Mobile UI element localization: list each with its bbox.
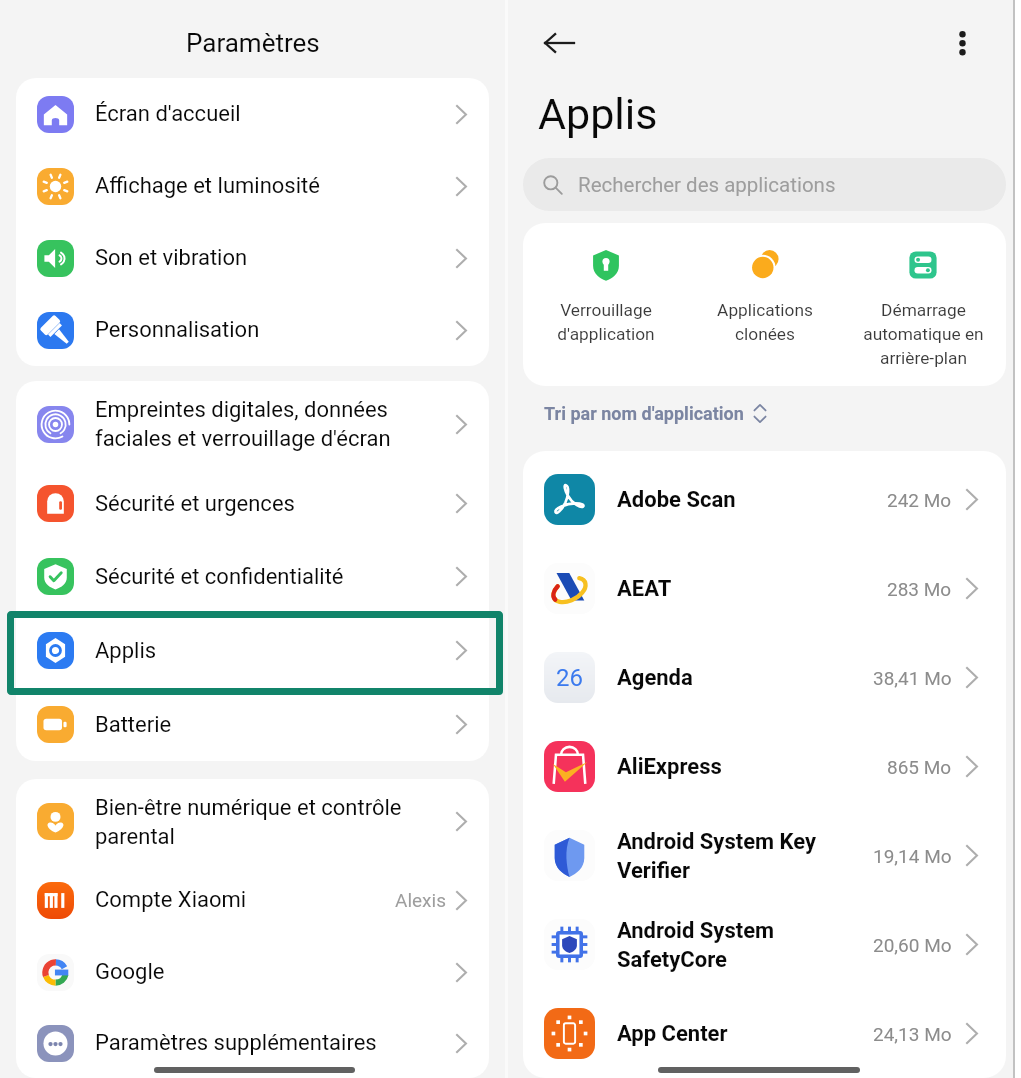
staticText: 38,41 Mo (873, 667, 952, 689)
staticText: Alexis (395, 889, 446, 911)
staticText: AliExpress (617, 754, 887, 780)
button[interactable]: Sécurité et confidentialité (16, 540, 489, 613)
staticText: Rechercher des applications (578, 173, 836, 197)
button[interactable]: Back (535, 19, 583, 67)
button[interactable]: Écran d'accueil (16, 78, 489, 150)
button[interactable]: 26 (523, 633, 1006, 722)
button[interactable]: Compte Xiaomi (16, 864, 489, 936)
button[interactable]: Applis (16, 613, 489, 688)
staticText: 24,13 Mo (873, 1023, 952, 1045)
staticText: Agenda (617, 665, 873, 691)
staticText: Verrouillage d'application (557, 300, 655, 344)
staticText: Google (95, 959, 456, 985)
staticText: AEAT (617, 576, 887, 602)
button[interactable]: Rechercher des applications (523, 158, 1006, 211)
staticText: Adobe Scan (617, 487, 887, 513)
button[interactable]: Tri par nom d'application (544, 403, 767, 424)
button[interactable]: Sécurité et urgences (16, 467, 489, 540)
staticText: 20,60 Mo (873, 934, 952, 956)
staticText: Son et vibration (95, 245, 456, 271)
staticText: Compte Xiaomi (95, 887, 395, 913)
button[interactable]: Son et vibration (16, 222, 489, 294)
staticText: Paramètres supplémentaires (95, 1030, 456, 1056)
button[interactable]: App Center (523, 989, 1006, 1078)
button[interactable]: Personnalisation (16, 294, 489, 366)
staticText: Paramètres (186, 28, 320, 58)
button[interactable]: Applications clonées (690, 223, 840, 344)
staticText: App Center (617, 1021, 873, 1047)
staticText: Tri par nom d'application (544, 403, 744, 424)
staticText: Batterie (95, 712, 456, 738)
button[interactable]: Empreintes digitales, données faciales e… (16, 381, 489, 467)
button[interactable]: More options (938, 19, 986, 67)
staticText: Android System Key Verifier (617, 829, 873, 883)
button[interactable]: Batterie (16, 688, 489, 761)
staticText: Bien-être numérique et contrôle parental (95, 795, 456, 849)
button[interactable]: Android System Key Verifier (523, 811, 1006, 900)
button[interactable]: Démarrage automatique en arrière-plan (848, 223, 998, 368)
staticText: Sécurité et confidentialité (95, 564, 456, 590)
staticText: Sécurité et urgences (95, 491, 456, 517)
staticText: Empreintes digitales, données faciales e… (95, 397, 456, 451)
staticText: 865 Mo (887, 756, 952, 778)
button[interactable]: Google (16, 936, 489, 1008)
button[interactable]: Verrouillage d'application (531, 223, 681, 344)
staticText: Applications clonées (717, 300, 813, 344)
staticText: 242 Mo (887, 489, 952, 511)
button[interactable]: AEAT (523, 544, 1006, 633)
staticText: Android System SafetyCore (617, 918, 873, 972)
staticText: Applis (538, 89, 658, 139)
staticText: Écran d'accueil (95, 101, 456, 127)
button[interactable]: Adobe Scan (523, 455, 1006, 544)
staticText: 283 Mo (887, 578, 952, 600)
staticText: Personnalisation (95, 317, 456, 343)
staticText: Démarrage automatique en arrière-plan (863, 300, 984, 368)
button[interactable]: Affichage et luminosité (16, 150, 489, 222)
button[interactable]: AliExpress (523, 722, 1006, 811)
staticText: 26 (556, 664, 583, 692)
button[interactable]: Paramètres supplémentaires (16, 1008, 489, 1078)
button[interactable]: Android System SafetyCore (523, 900, 1006, 989)
button[interactable]: Bien-être numérique et contrôle parental (16, 779, 489, 864)
staticText: Applis (95, 638, 456, 664)
staticText: 19,14 Mo (873, 845, 952, 867)
staticText: Affichage et luminosité (95, 173, 456, 199)
